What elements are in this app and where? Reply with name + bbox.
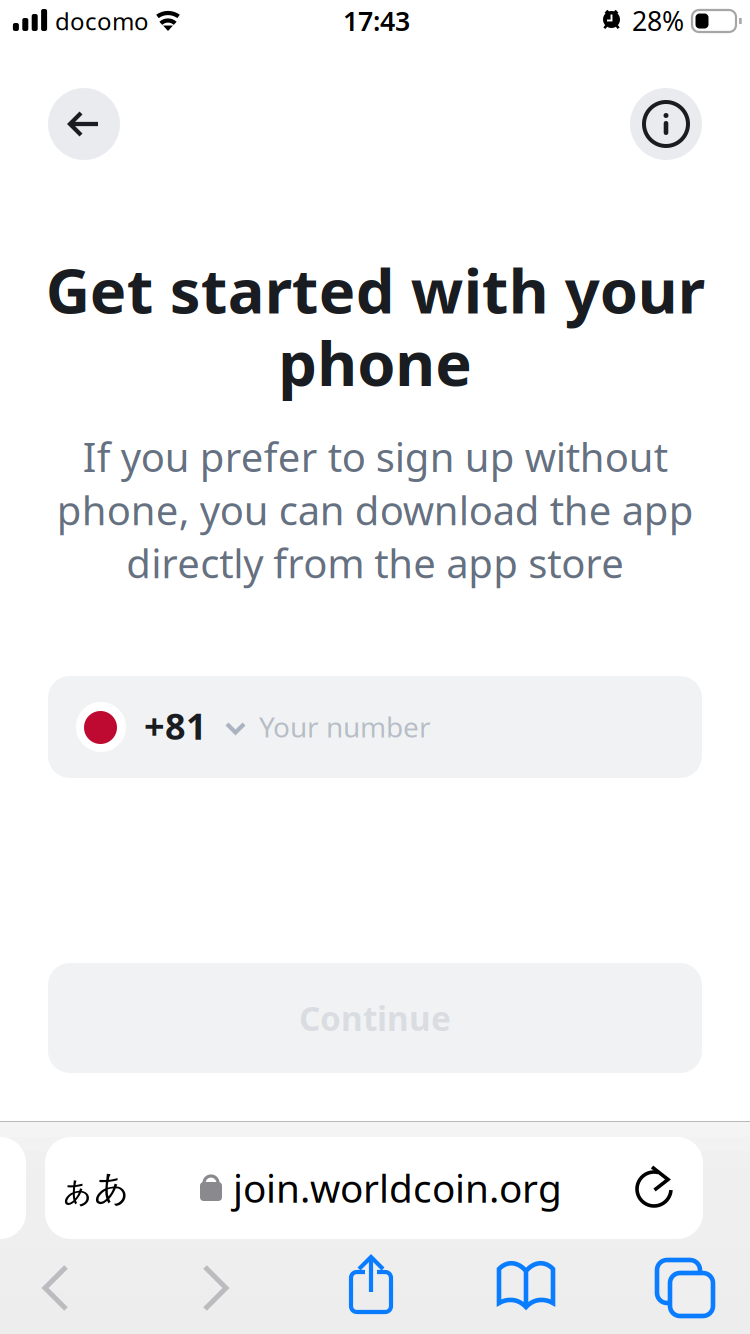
staticText: +81 [144,702,207,750]
staticText: Your number [259,708,431,745]
staticText: Get started with your phone [45,249,704,403]
button[interactable]: Continue [48,963,702,1073]
button[interactable]: Tabs [657,1260,741,1330]
staticText: ぁあ [59,1167,129,1210]
button[interactable]: Back [14,1256,98,1320]
button[interactable]: +81 [48,676,702,778]
staticText: If you prefer to sign up without phone, … [56,430,693,589]
staticText: 28% [632,3,684,38]
button[interactable]: Back [48,88,120,160]
button[interactable]: Forward [174,1256,258,1320]
button[interactable]: Share [348,1254,432,1324]
staticText: Continue [299,996,451,1040]
staticText: 17:43 [343,3,410,38]
button[interactable]: Bookmarks [496,1260,580,1330]
staticText: docomo [55,5,149,37]
staticText: join.worldcoin.org [233,1162,562,1213]
button[interactable]: ぁあ [45,1137,703,1239]
button[interactable]: Info [630,88,702,160]
